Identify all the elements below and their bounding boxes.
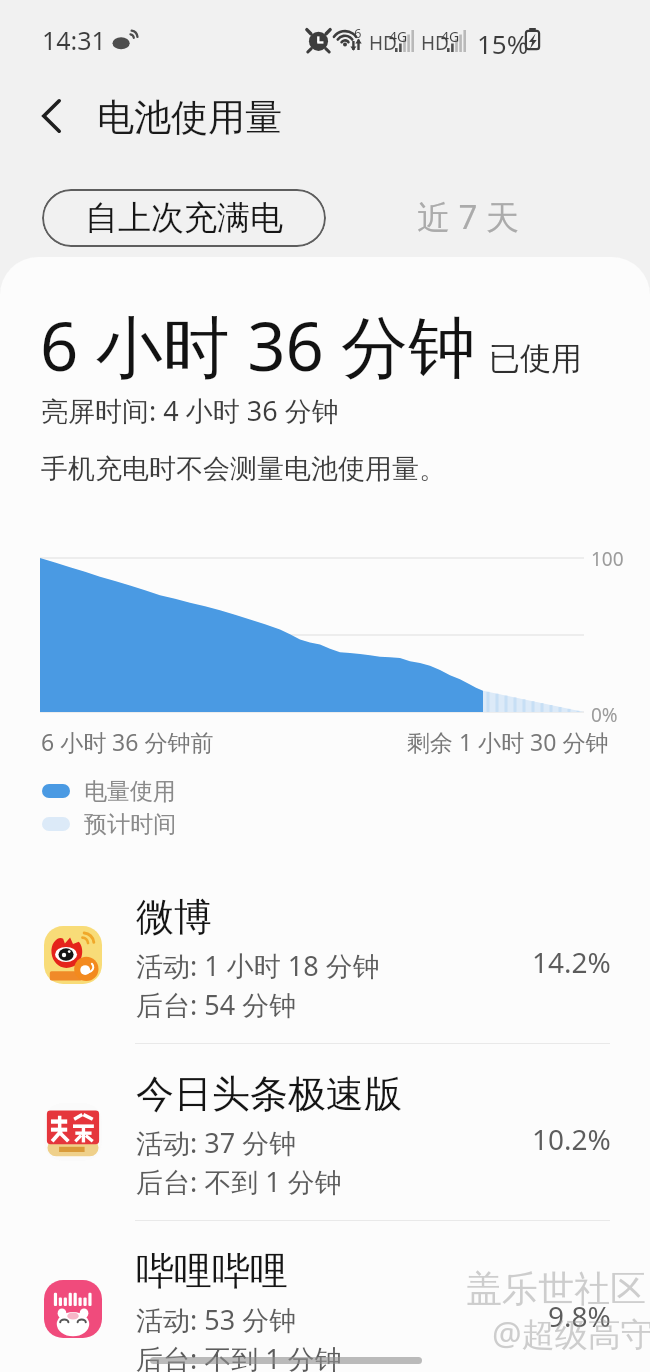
staticText: HD <box>369 30 397 56</box>
button[interactable] <box>0 1045 650 1221</box>
staticText: 4G <box>389 27 408 46</box>
staticText: 自上次充满电 <box>85 197 283 239</box>
button[interactable] <box>0 868 650 1044</box>
staticText: 后台: 54 分钟 <box>136 986 297 1023</box>
staticText: 近 7 天 <box>417 194 520 239</box>
staticText: @超级高守 <box>492 1311 650 1356</box>
staticText: 6 小时 36 分钟前 <box>41 726 214 757</box>
button[interactable]: 自上次充满电 <box>42 189 326 247</box>
staticText: 活动: 37 分钟 <box>136 1124 297 1161</box>
staticText: 活动: 1 小时 18 分钟 <box>136 947 380 984</box>
staticText: 微博 <box>136 893 212 941</box>
staticText: 盖乐世社区 <box>466 1266 646 1311</box>
staticText: 100 <box>591 546 624 572</box>
staticText: 14.2% <box>532 943 611 981</box>
staticText: 电量使用 <box>84 777 176 806</box>
staticText: 6 <box>354 24 362 42</box>
staticText: 9.8% <box>548 1297 611 1335</box>
staticText: 0% <box>591 702 618 728</box>
staticText: 预计时间 <box>84 810 176 839</box>
staticText: HD <box>421 30 449 56</box>
staticText: 4G <box>441 27 460 46</box>
button[interactable] <box>0 1222 650 1372</box>
staticText: 后台: 不到 1 分钟 <box>136 1340 342 1372</box>
staticText: 剩余 1 小时 30 分钟 <box>407 726 609 757</box>
staticText: 6 小时 36 分钟 <box>40 299 476 391</box>
staticText: 今日头条极速版 <box>136 1070 402 1118</box>
staticText: 已使用 <box>489 339 582 378</box>
staticText: 后台: 不到 1 分钟 <box>136 1163 342 1200</box>
staticText: 15% <box>477 26 529 61</box>
staticText: 亮屏时间: 4 小时 36 分钟 <box>41 392 339 429</box>
button[interactable]: 近 7 天 <box>417 187 520 245</box>
staticText: 哔哩哔哩 <box>136 1247 288 1295</box>
staticText: 活动: 53 分钟 <box>136 1301 297 1338</box>
staticText: 电池使用量 <box>97 94 282 141</box>
staticText: 手机充电时不会测量电池使用量。 <box>41 452 446 486</box>
button[interactable]: Back <box>25 90 77 142</box>
staticText: 14:31 <box>42 23 106 57</box>
staticText: 10.2% <box>532 1120 611 1158</box>
